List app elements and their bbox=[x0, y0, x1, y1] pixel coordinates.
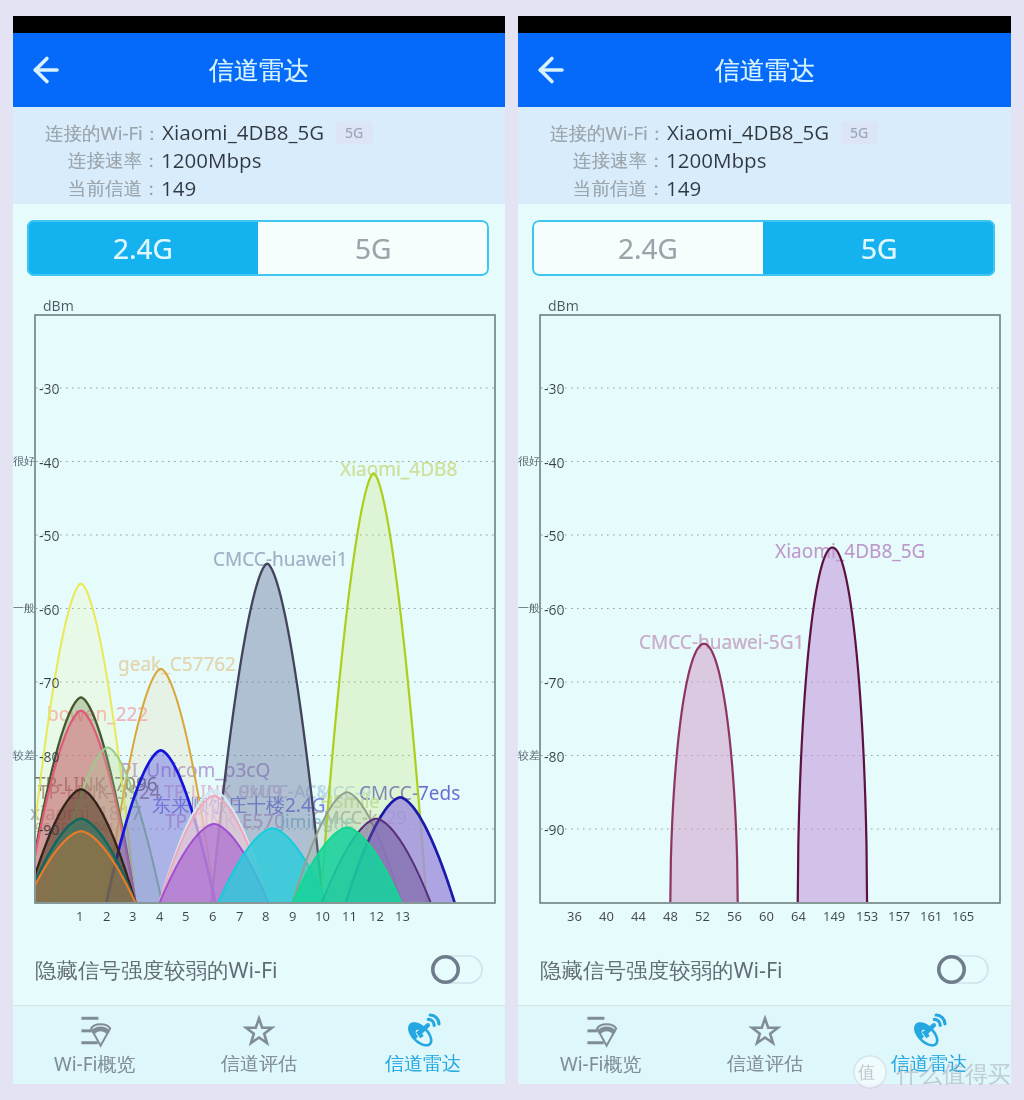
staticText: 连接速率： bbox=[68, 149, 161, 172]
staticText: TP-LINK_9xU9 bbox=[164, 779, 283, 804]
staticText: -90 bbox=[544, 820, 565, 839]
staticText: 很好 bbox=[13, 454, 35, 468]
staticText: CMCC-kc29 bbox=[312, 805, 407, 830]
button[interactable]: 2.4G bbox=[532, 220, 763, 276]
staticText: CMCC-huawei-5G1 bbox=[639, 629, 805, 655]
staticText: 5G bbox=[345, 123, 364, 142]
button[interactable]: Back bbox=[532, 46, 580, 94]
staticText: 40 bbox=[599, 907, 614, 925]
staticText: -80 bbox=[39, 747, 60, 766]
staticText: 3 bbox=[129, 907, 137, 925]
button[interactable]: 5G bbox=[258, 220, 489, 276]
staticText: TP-LINK_7096 bbox=[35, 771, 158, 797]
button[interactable]: Hide weak Wi-Fi bbox=[431, 955, 483, 984]
staticText: 44 bbox=[631, 907, 646, 925]
staticText: 信道雷达 bbox=[715, 55, 815, 86]
staticText: 较差 bbox=[518, 748, 540, 762]
staticText: 隐藏信号强度较弱的Wi-Fi bbox=[35, 955, 278, 984]
staticText: -70 bbox=[39, 673, 60, 692]
staticText: CMCC-huawei1 bbox=[213, 546, 348, 572]
staticText: 信道评估 bbox=[727, 1052, 803, 1076]
staticText: dBm bbox=[548, 296, 579, 315]
staticText: dBm bbox=[43, 296, 74, 315]
staticText: 信道雷达 bbox=[891, 1052, 967, 1076]
staticText: 149 bbox=[666, 174, 702, 202]
staticText: geak_C57762 bbox=[118, 651, 236, 677]
staticText: TP-LINK_3924 bbox=[38, 779, 161, 805]
button[interactable]: 信道评估 bbox=[683, 1006, 847, 1084]
staticText: -30 bbox=[544, 379, 565, 398]
staticText: 7 bbox=[236, 907, 244, 925]
staticText: 149 bbox=[823, 907, 846, 925]
staticText: 5G bbox=[861, 229, 898, 267]
staticText: HSmile bbox=[320, 789, 380, 814]
staticText: 当前信道： bbox=[68, 177, 161, 200]
staticText: 一般 bbox=[13, 601, 35, 615]
staticText: Xiaomi_4DB8_5G bbox=[162, 118, 325, 146]
staticText: 值 bbox=[858, 1062, 875, 1083]
staticText: 157 bbox=[888, 907, 911, 925]
staticText: 信道雷达 bbox=[385, 1052, 461, 1076]
button[interactable]: 信道评估 bbox=[177, 1006, 341, 1084]
staticText: 1200Mbps bbox=[666, 146, 767, 174]
staticText: 52 bbox=[695, 907, 710, 925]
staticText: bowen_222 bbox=[47, 701, 149, 727]
staticText: 连接速率： bbox=[573, 149, 666, 172]
staticText: -40 bbox=[544, 453, 565, 472]
staticText: xiaomi_1817 bbox=[30, 800, 142, 826]
staticText: 6 bbox=[209, 907, 217, 925]
staticText: Wi-Fi概览 bbox=[560, 1051, 642, 1077]
staticText: 48 bbox=[663, 907, 678, 925]
staticText: 2.4G bbox=[113, 229, 173, 267]
staticText: -80 bbox=[544, 747, 565, 766]
staticText: 什么值得买 bbox=[896, 1060, 1011, 1089]
staticText: 161 bbox=[920, 907, 943, 925]
staticText: Wi-Fi概览 bbox=[54, 1051, 136, 1077]
staticText: 1 bbox=[76, 907, 84, 925]
staticText: 13 bbox=[395, 907, 410, 925]
staticText: 8 bbox=[262, 907, 270, 925]
staticText: 153 bbox=[856, 907, 879, 925]
button[interactable]: 2.4G bbox=[27, 220, 258, 276]
staticText: Xiaomi_4DB8_5G bbox=[775, 538, 926, 564]
staticText: Xiaomi_4DB8_5G bbox=[667, 118, 830, 146]
staticText: 较差 bbox=[13, 748, 35, 762]
staticText: 60 bbox=[759, 907, 774, 925]
staticText: 连接的Wi-Fi： bbox=[550, 120, 667, 145]
staticText: 9 bbox=[289, 907, 297, 925]
staticText: 东来顺饭庄十楼2.4G bbox=[152, 792, 326, 818]
staticText: 连接的Wi-Fi： bbox=[45, 120, 162, 145]
staticText: TP-LINK-E570 bbox=[165, 808, 286, 834]
staticText: 5G bbox=[850, 123, 869, 142]
staticText: 12 bbox=[369, 907, 384, 925]
staticText: 11 bbox=[342, 907, 357, 925]
staticText: 36 bbox=[567, 907, 582, 925]
button[interactable]: Hide weak Wi-Fi bbox=[937, 955, 989, 984]
staticText: -70 bbox=[544, 673, 565, 692]
staticText: -90 bbox=[39, 820, 60, 839]
staticText: 1200Mbps bbox=[161, 146, 262, 174]
staticText: 隐藏信号强度较弱的Wi-Fi bbox=[540, 955, 783, 984]
staticText: CMCC-9 bbox=[305, 780, 372, 805]
staticText: 10 bbox=[315, 907, 330, 925]
staticText: 64 bbox=[791, 907, 806, 925]
staticText: CMCC-AC8 bbox=[238, 779, 327, 804]
button[interactable]: Back bbox=[27, 46, 75, 94]
staticText: -60 bbox=[544, 600, 565, 619]
button[interactable]: Wi-Fi概览 bbox=[13, 1006, 177, 1084]
staticText: Xiaomi_4DB8 bbox=[340, 456, 458, 482]
button[interactable]: 5G bbox=[763, 220, 995, 276]
staticText: 很好 bbox=[518, 454, 540, 468]
staticText: 56 bbox=[727, 907, 742, 925]
staticText: 165 bbox=[952, 907, 975, 925]
staticText: PI_Unicom_p3cQ bbox=[120, 757, 271, 783]
staticText: 当前信道： bbox=[573, 177, 666, 200]
staticText: 2.4G bbox=[618, 229, 678, 267]
staticText: -60 bbox=[39, 600, 60, 619]
staticText: 4 bbox=[156, 907, 164, 925]
staticText: 信道评估 bbox=[221, 1052, 297, 1076]
button[interactable]: 信道雷达 bbox=[847, 1006, 1011, 1084]
button[interactable]: 信道雷达 bbox=[341, 1006, 505, 1084]
button[interactable]: Wi-Fi概览 bbox=[518, 1006, 683, 1084]
staticText: -50 bbox=[39, 526, 60, 545]
